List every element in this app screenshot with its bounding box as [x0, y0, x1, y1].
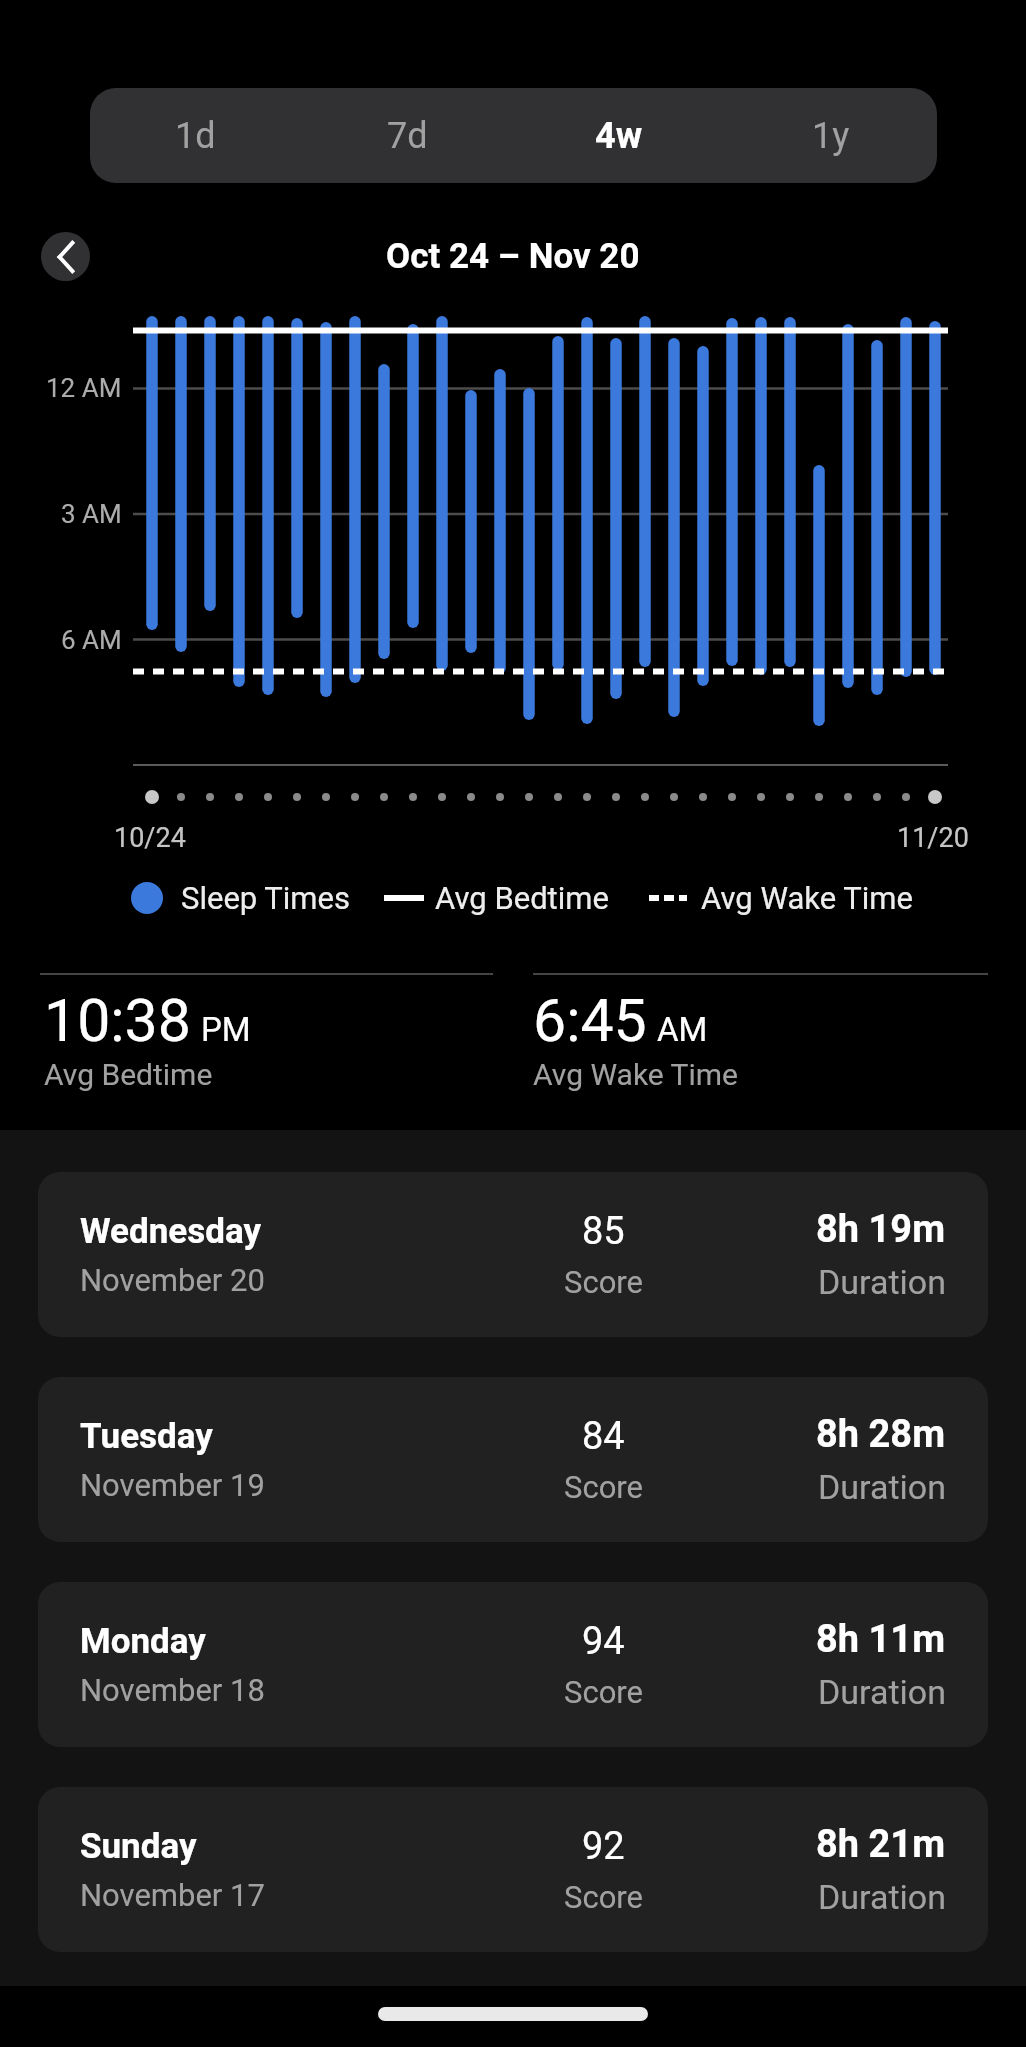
staticText: 94 — [582, 1619, 625, 1664]
staticText: Monday — [80, 1621, 206, 1662]
staticText: 3 AM — [61, 499, 122, 529]
button[interactable]: Wednesday — [38, 1172, 988, 1337]
staticText: Wednesday — [80, 1211, 262, 1252]
staticText: 8h 19m — [816, 1207, 946, 1252]
staticText: Score — [564, 1674, 643, 1710]
staticText: Duration — [818, 1877, 946, 1917]
staticText: Avg Wake Time — [533, 1057, 739, 1092]
button[interactable]: 1d — [90, 88, 301, 183]
staticText: 11/20 — [897, 822, 969, 854]
staticText: 4w — [595, 115, 643, 157]
staticText: 6:45 — [533, 986, 647, 1055]
staticText: Score — [564, 1469, 643, 1505]
staticText: Avg Bedtime — [435, 880, 609, 916]
button[interactable]: Sunday — [38, 1787, 988, 1952]
staticText: 85 — [582, 1209, 625, 1254]
staticText: 8h 28m — [816, 1412, 946, 1457]
staticText: AM — [657, 1010, 708, 1049]
staticText: Duration — [818, 1672, 946, 1712]
button[interactable]: Monday — [38, 1582, 988, 1747]
staticText: 8h 21m — [816, 1822, 946, 1867]
staticText: Tuesday — [80, 1416, 213, 1457]
staticText: Avg Wake Time — [701, 880, 913, 916]
staticText: Duration — [818, 1467, 946, 1507]
staticText: November 19 — [80, 1467, 265, 1503]
staticText: Sunday — [80, 1826, 197, 1867]
staticText: Avg Bedtime — [44, 1057, 213, 1092]
staticText: Score — [564, 1264, 643, 1300]
staticText: 10/24 — [114, 822, 186, 854]
button[interactable]: Tuesday — [38, 1377, 988, 1542]
staticText: 7d — [387, 115, 428, 157]
staticText: Oct 24 – Nov 20 — [386, 236, 640, 277]
staticText: 8h 11m — [816, 1617, 946, 1662]
button[interactable]: 4w — [513, 88, 725, 183]
staticText: 6 AM — [61, 625, 122, 655]
staticText: 84 — [582, 1414, 625, 1459]
staticText: November 17 — [80, 1877, 265, 1913]
staticText: 10:38 — [44, 986, 191, 1055]
staticText: November 18 — [80, 1672, 265, 1708]
button[interactable] — [41, 232, 90, 281]
button[interactable]: 7d — [301, 88, 513, 183]
staticText: 1d — [175, 115, 216, 157]
staticText: 1y — [812, 115, 850, 157]
staticText: Duration — [818, 1262, 946, 1302]
staticText: November 20 — [80, 1262, 265, 1298]
staticText: Sleep Times — [181, 880, 350, 916]
staticText: Score — [564, 1879, 643, 1915]
staticText: 92 — [582, 1824, 625, 1869]
staticText: 12 AM — [46, 373, 122, 403]
staticText: PM — [201, 1010, 251, 1049]
button[interactable]: 1y — [725, 88, 937, 183]
